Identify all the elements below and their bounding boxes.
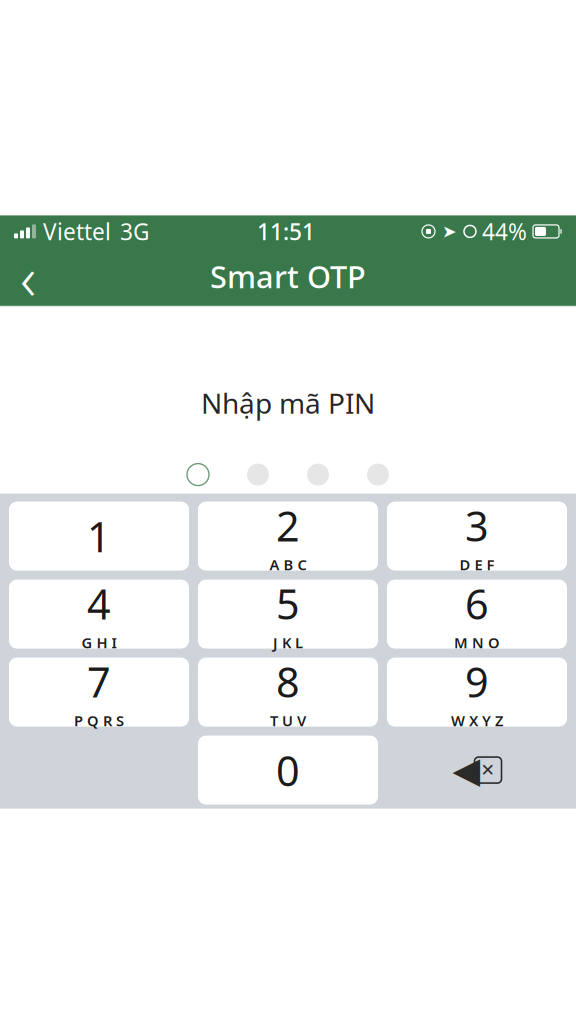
button[interactable]: 3: [387, 502, 567, 571]
staticText: ✕: [480, 760, 495, 780]
staticText: A B C: [269, 555, 306, 574]
button[interactable]: 7: [9, 658, 189, 727]
staticText: 3: [465, 498, 489, 553]
staticText: 44%: [482, 216, 527, 246]
staticText: M N O: [454, 633, 500, 652]
staticText: P Q R S: [74, 711, 124, 730]
staticText: T U V: [270, 711, 306, 730]
button[interactable]: 1: [9, 502, 189, 571]
button[interactable]: 2: [198, 502, 378, 571]
staticText: J K L: [273, 633, 303, 652]
staticText: 3G: [120, 216, 150, 246]
button[interactable]: Delete: [387, 736, 567, 805]
staticText: 11:51: [257, 216, 315, 246]
button[interactable]: 6: [387, 580, 567, 649]
button[interactable]: 9: [387, 658, 567, 727]
staticText: 8: [276, 654, 300, 709]
staticText: 5: [276, 576, 300, 631]
staticText: 7: [87, 654, 111, 709]
staticText: 1: [87, 509, 111, 563]
button[interactable]: 4: [9, 580, 189, 649]
button[interactable]: 8: [198, 658, 378, 727]
staticText: ‹: [20, 236, 36, 317]
staticText: 6: [465, 576, 489, 631]
staticText: G H I: [81, 633, 116, 652]
staticText: 0: [276, 743, 300, 797]
staticText: Viettel: [43, 216, 111, 246]
staticText: ➤: [442, 222, 457, 241]
staticText: W X Y Z: [451, 711, 503, 730]
staticText: D E F: [459, 555, 494, 574]
staticText: 2: [276, 498, 300, 553]
staticText: ◀: [452, 750, 480, 791]
button[interactable]: Back: [0, 248, 56, 304]
staticText: 9: [465, 654, 489, 709]
staticText: 4: [87, 576, 111, 631]
staticText: Nhập mã PIN: [201, 384, 375, 422]
button[interactable]: 0: [198, 736, 378, 805]
staticText: Smart OTP: [210, 256, 366, 297]
button[interactable]: 5: [198, 580, 378, 649]
